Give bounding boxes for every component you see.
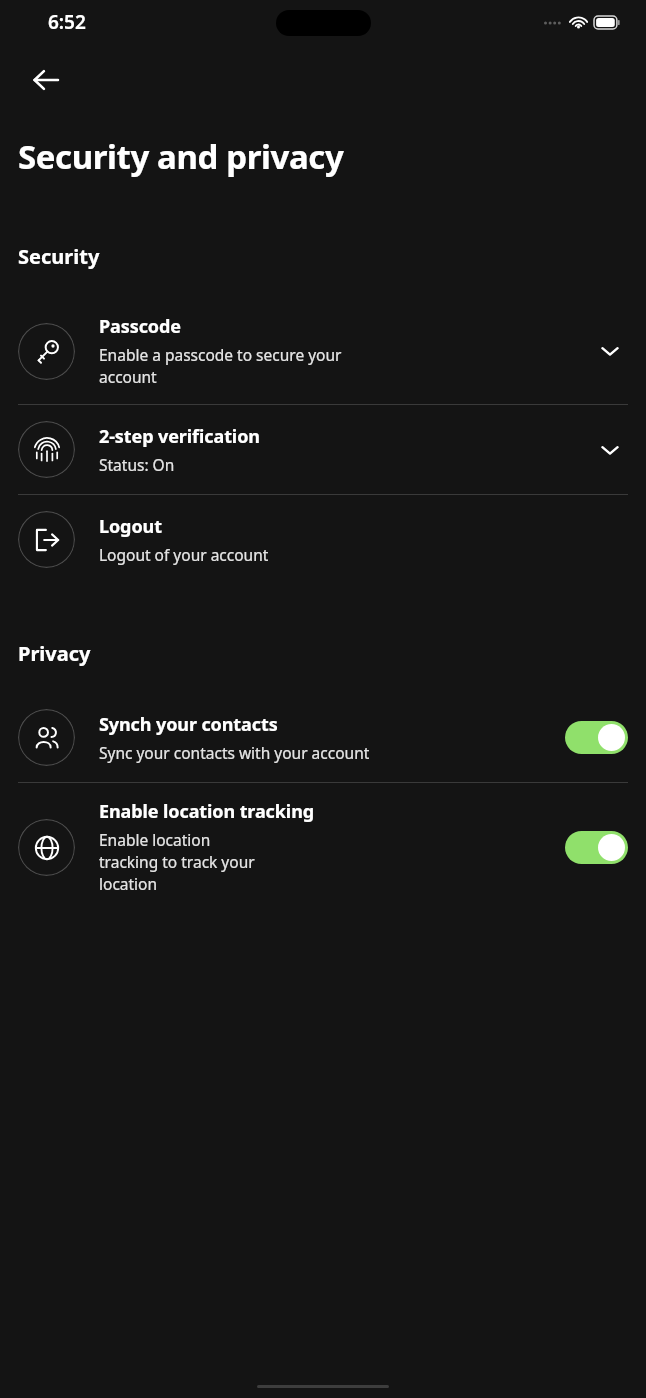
button[interactable]: Logout — [0, 495, 646, 584]
button[interactable]: Expand — [592, 333, 628, 369]
staticText: Status: On — [99, 454, 175, 476]
staticText: 6:52 — [48, 9, 86, 35]
staticText: Logout of your account — [99, 544, 269, 566]
staticText: Enable a passcode to secure your account — [99, 344, 399, 388]
staticText: Enable location tracking — [99, 799, 315, 824]
staticText: Security and privacy — [18, 134, 344, 179]
button[interactable]: Back — [22, 56, 70, 104]
button[interactable]: Enable location tracking — [0, 783, 646, 911]
button[interactable]: Synch your contacts — [0, 693, 646, 782]
button[interactable]: 2-step verification — [0, 405, 646, 494]
staticText: Sync your contacts with your account — [99, 742, 370, 764]
staticText: Privacy — [18, 640, 91, 667]
staticText: Synch your contacts — [99, 712, 278, 737]
staticText: Enable location tracking to track your l… — [99, 829, 269, 895]
button[interactable]: Passcode — [0, 298, 646, 404]
staticText: Security — [18, 243, 100, 270]
staticText: Passcode — [99, 314, 181, 339]
staticText: Logout — [99, 514, 162, 539]
button[interactable]: Toggle — [565, 721, 628, 754]
staticText: 2-step verification — [99, 424, 260, 449]
button[interactable]: Toggle — [565, 831, 628, 864]
button[interactable]: Expand — [592, 432, 628, 468]
